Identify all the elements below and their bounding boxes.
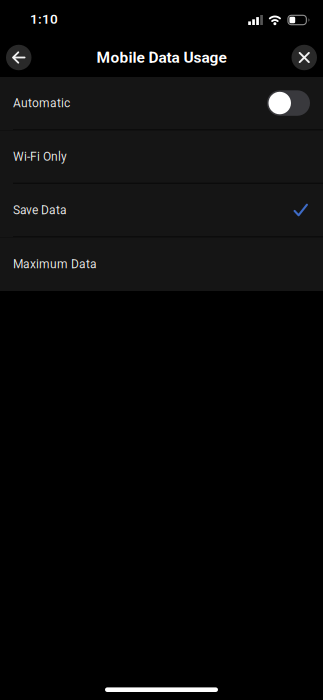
staticText: Mobile Data Usage bbox=[96, 48, 226, 66]
staticText: Maximum Data bbox=[13, 257, 97, 271]
button[interactable]: Automatic bbox=[0, 77, 323, 130]
button[interactable]: Wi-Fi Only bbox=[0, 130, 323, 184]
staticText: Automatic bbox=[13, 96, 70, 110]
button[interactable]: Save Data bbox=[0, 184, 323, 237]
staticText: 1:10 bbox=[30, 11, 58, 27]
button[interactable]: Close bbox=[291, 45, 323, 70]
staticText: Save Data bbox=[13, 203, 67, 217]
button[interactable]: Maximum Data bbox=[0, 237, 323, 291]
button[interactable]: Back bbox=[0, 45, 31, 70]
staticText: Wi-Fi Only bbox=[13, 149, 67, 164]
